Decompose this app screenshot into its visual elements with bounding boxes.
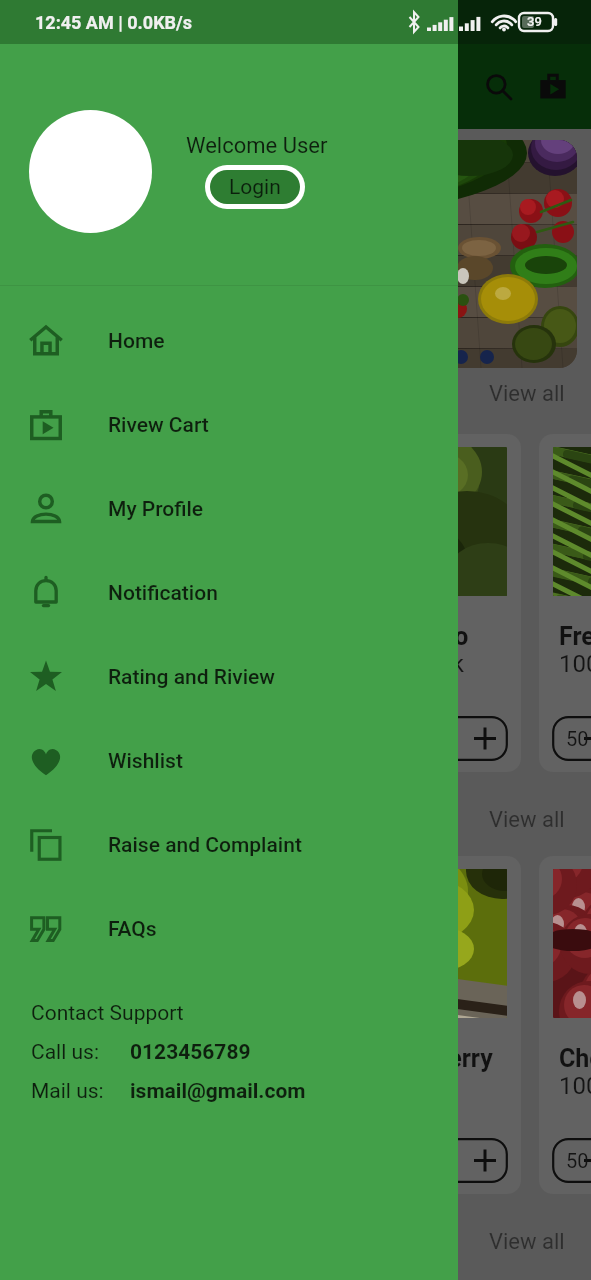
button[interactable]: Welcome User xyxy=(0,0,458,1280)
button[interactable]: Add to cart xyxy=(27,716,158,761)
staticText: Tomato xyxy=(384,622,521,651)
staticText: 100 tk xyxy=(559,1072,591,1100)
staticText: Call us: xyxy=(31,1040,100,1065)
staticText: Blueberry xyxy=(34,1044,171,1073)
button[interactable]: Login xyxy=(210,170,300,204)
staticText: Raise and Complaint xyxy=(108,833,302,858)
button[interactable]: Rating and Riview xyxy=(0,635,458,719)
staticText: 100 tk xyxy=(384,1072,521,1100)
staticText: 1500 tk xyxy=(384,650,521,678)
staticText: Contact Support xyxy=(31,1001,184,1026)
staticText: Rivew Cart xyxy=(108,413,209,438)
button[interactable]: Home xyxy=(0,299,458,383)
button[interactable]: Tomato xyxy=(364,434,521,772)
staticText: Rating and Riview xyxy=(108,665,275,690)
staticText: 39 xyxy=(527,14,542,29)
button[interactable]: View all xyxy=(477,375,577,413)
staticText: 50 tk xyxy=(566,1149,591,1172)
button[interactable]: My Profile xyxy=(0,467,458,551)
staticText: 100 tk xyxy=(34,1072,171,1100)
button[interactable]: Cherry xyxy=(189,856,346,1194)
button[interactable]: Rivew Cart xyxy=(0,383,458,467)
staticText: Cherry xyxy=(209,1044,346,1073)
staticText: ismail@gmail.com xyxy=(130,1079,306,1104)
button[interactable]: Notification xyxy=(0,551,458,635)
staticText: 100 tk xyxy=(209,650,346,678)
button[interactable]: Fresh Bean xyxy=(539,434,591,772)
button[interactable]: Tomato xyxy=(14,434,171,772)
staticText: Welcome User xyxy=(186,133,328,159)
button[interactable]: Blueberry xyxy=(364,856,521,1194)
button[interactable]: View all xyxy=(477,1223,577,1261)
staticText: 0123456789 xyxy=(130,1040,251,1065)
button[interactable]: Blueberry xyxy=(14,856,171,1194)
staticText: Notification xyxy=(108,581,218,606)
staticText: View all xyxy=(489,807,565,833)
button[interactable]: FAQs xyxy=(0,887,458,971)
button[interactable]: Add to cart xyxy=(552,1138,591,1183)
staticText: Mail us: xyxy=(31,1079,104,1104)
staticText: FAQs xyxy=(108,917,157,942)
button[interactable]: Wishlist xyxy=(0,719,458,803)
button[interactable]: Fresh Bean xyxy=(189,434,346,772)
button[interactable]: Search xyxy=(475,63,523,111)
staticText: My Profile xyxy=(108,497,204,522)
staticText: Login xyxy=(229,175,281,200)
button[interactable]: Add to cart xyxy=(377,716,508,761)
button[interactable]: View all xyxy=(477,801,577,839)
staticText: 50 tk xyxy=(391,727,481,750)
staticText: Wishlist xyxy=(108,749,183,774)
button[interactable]: Raise and Complaint xyxy=(0,803,458,887)
staticText: View all xyxy=(489,381,565,407)
staticText: View all xyxy=(489,1229,565,1255)
staticText: 12:45 AM | 0.0KB/s xyxy=(35,12,193,33)
staticText: 100 tk xyxy=(209,1072,346,1100)
staticText: 100 tk xyxy=(559,650,591,678)
staticText: 50 tk xyxy=(391,1149,481,1172)
staticText: Home xyxy=(108,329,165,354)
staticText: 50 tk xyxy=(566,727,591,750)
staticText: 1500 tk xyxy=(34,650,171,678)
button[interactable]: Add to cart xyxy=(552,716,591,761)
staticText: Blueberry xyxy=(384,1044,521,1073)
button[interactable]: Cart xyxy=(529,63,577,111)
button[interactable]: Add to cart xyxy=(377,1138,508,1183)
staticText: Cherry xyxy=(559,1044,591,1073)
staticText: Fresh Bean xyxy=(559,622,591,651)
button[interactable]: Cherry xyxy=(539,856,591,1194)
